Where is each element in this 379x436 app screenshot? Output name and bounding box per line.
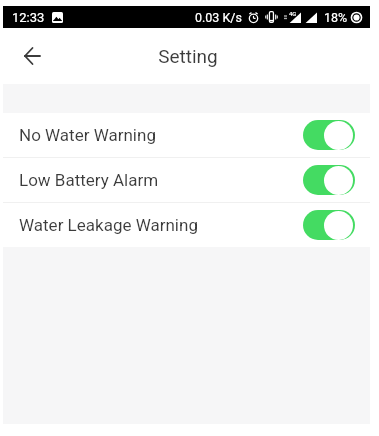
staticText: 18% bbox=[324, 10, 348, 25]
staticText: Setting bbox=[158, 45, 218, 67]
button[interactable]: Toggle bbox=[303, 165, 355, 195]
button[interactable]: No Water Warning bbox=[3, 113, 370, 157]
button[interactable]: Back bbox=[10, 34, 54, 78]
staticText: 12:33 bbox=[12, 10, 45, 25]
button[interactable]: Water Leakage Warning bbox=[3, 203, 370, 247]
button[interactable]: Toggle bbox=[303, 210, 355, 240]
staticText: Water Leakage Warning bbox=[19, 215, 198, 235]
staticText: Low Battery Alarm bbox=[19, 170, 159, 190]
button[interactable]: Low Battery Alarm bbox=[3, 158, 370, 202]
staticText: 4G bbox=[289, 10, 297, 17]
staticText: No Water Warning bbox=[19, 125, 156, 145]
staticText: 0.03 K/s bbox=[195, 10, 242, 25]
button[interactable]: Toggle bbox=[303, 120, 355, 150]
